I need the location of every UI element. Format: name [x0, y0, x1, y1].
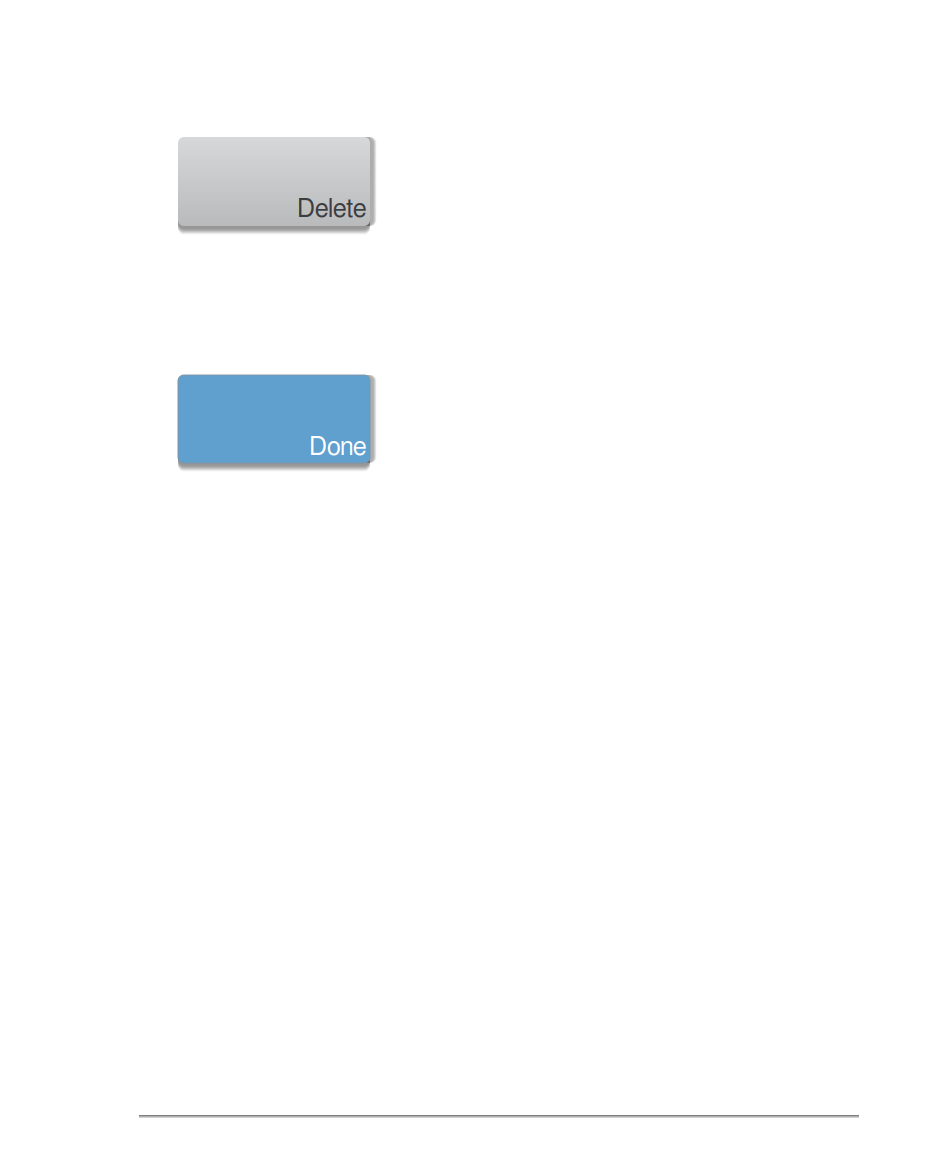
button[interactable]: Delete [178, 137, 377, 235]
staticText: Done [309, 435, 367, 460]
button[interactable]: Done [178, 375, 377, 472]
staticText: Delete [297, 197, 367, 222]
